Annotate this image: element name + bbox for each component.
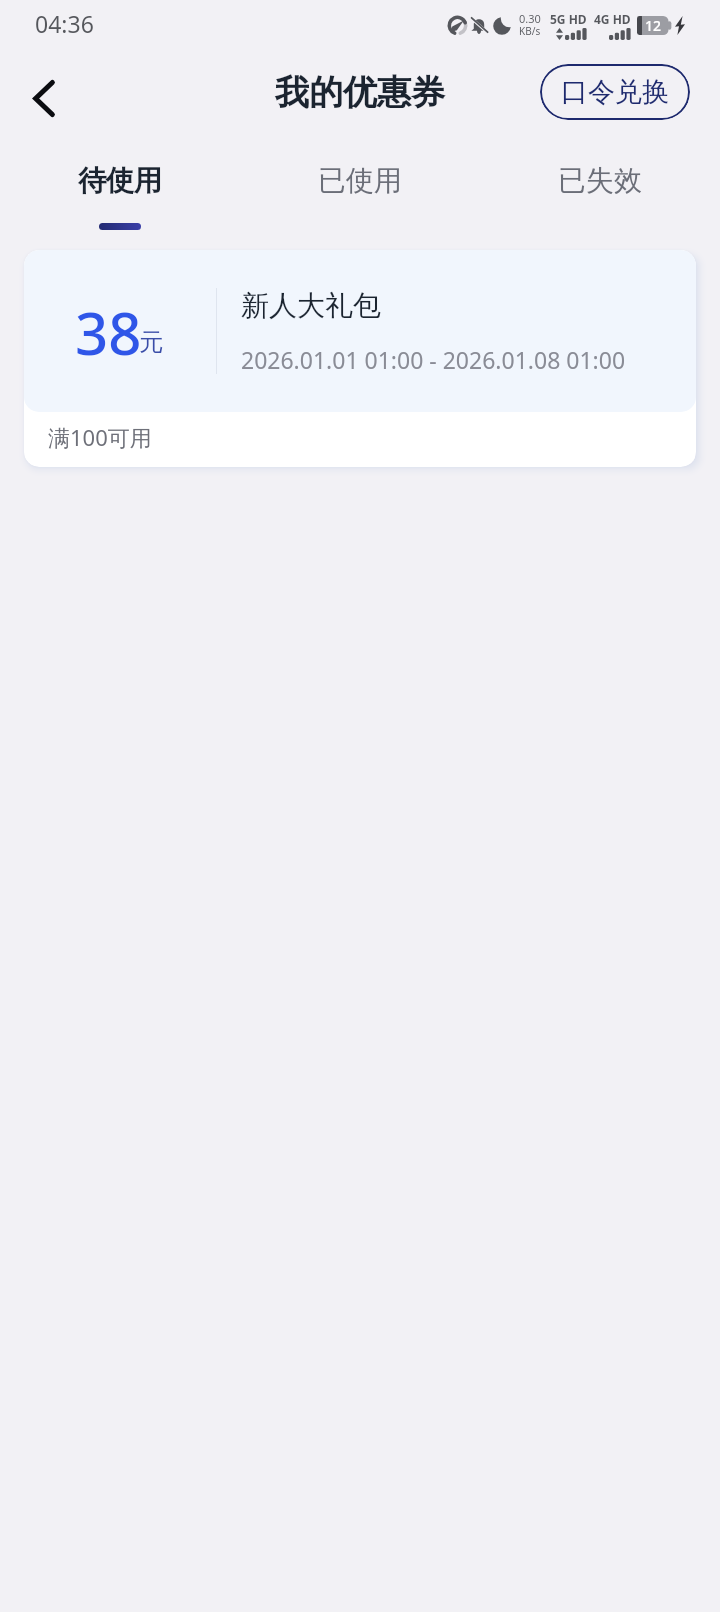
staticText: 待使用	[78, 163, 162, 198]
staticText: 已失效	[558, 163, 642, 198]
staticText: 5G HD	[550, 11, 587, 27]
button[interactable]: 38	[24, 250, 696, 467]
staticText: 04:36	[35, 8, 94, 39]
staticText: 已使用	[318, 163, 402, 198]
button[interactable]: 待使用	[0, 142, 240, 230]
staticText: 38	[75, 293, 142, 372]
staticText: 满100可用	[48, 422, 152, 452]
button[interactable]: Back	[10, 62, 78, 130]
staticText: 12	[645, 16, 662, 35]
button[interactable]: 已使用	[240, 142, 480, 223]
staticText: 0.30	[519, 11, 541, 26]
staticText: 4G HD	[594, 11, 631, 27]
button[interactable]: 口令兑换	[540, 64, 690, 120]
staticText: KB/s	[519, 24, 541, 38]
staticText: 元	[139, 327, 163, 357]
button[interactable]: 已失效	[480, 142, 720, 223]
staticText: 2026.01.01 01:00 - 2026.01.08 01:00	[241, 344, 626, 375]
staticText: 口令兑换	[561, 75, 669, 109]
staticText: 我的优惠券	[275, 71, 445, 114]
staticText: 新人大礼包	[241, 288, 381, 323]
